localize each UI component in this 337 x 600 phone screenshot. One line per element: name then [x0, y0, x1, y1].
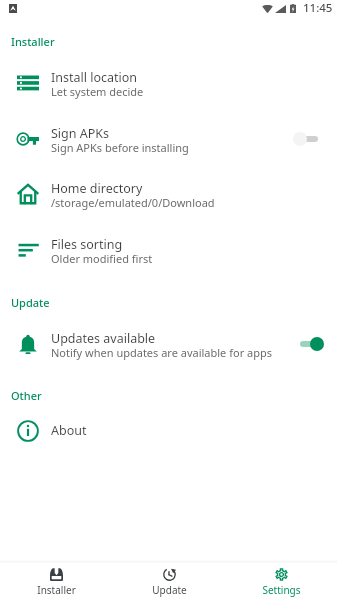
button[interactable]: About: [0, 408, 337, 453]
button[interactable]: Updates available: [0, 321, 337, 366]
staticText: Installer: [37, 583, 76, 597]
staticText: Install location: [51, 69, 138, 86]
staticText: Installer: [11, 34, 55, 49]
button[interactable]: Files sorting: [0, 227, 337, 272]
staticText: Settings: [262, 583, 301, 597]
staticText: About: [51, 422, 87, 439]
button[interactable]: Home directory: [0, 171, 337, 216]
button[interactable]: Installer: [0, 563, 113, 600]
staticText: Updates available: [51, 330, 156, 347]
staticText: Files sorting: [51, 236, 123, 253]
staticText: Sign APKs: [51, 125, 110, 142]
button[interactable]: Update: [113, 563, 225, 600]
staticText: Let system decide: [51, 84, 144, 99]
staticText: Other: [11, 388, 42, 403]
staticText: Home directory: [51, 180, 143, 197]
button[interactable]: Settings: [225, 563, 337, 600]
staticText: Notify when updates are available for ap…: [51, 345, 272, 360]
staticText: Sign APKs before installing: [51, 140, 189, 155]
staticText: Older modified first: [51, 251, 153, 266]
button[interactable]: Sign APKs: [0, 116, 337, 161]
staticText: /storage/emulated/0/Download: [51, 195, 215, 210]
button[interactable]: Install location: [0, 60, 337, 105]
staticText: Update: [11, 295, 50, 310]
staticText: Update: [152, 583, 187, 597]
button[interactable]: Toggle off: [293, 129, 320, 149]
staticText: 11:45: [303, 0, 333, 16]
button[interactable]: Toggle on: [297, 334, 324, 354]
